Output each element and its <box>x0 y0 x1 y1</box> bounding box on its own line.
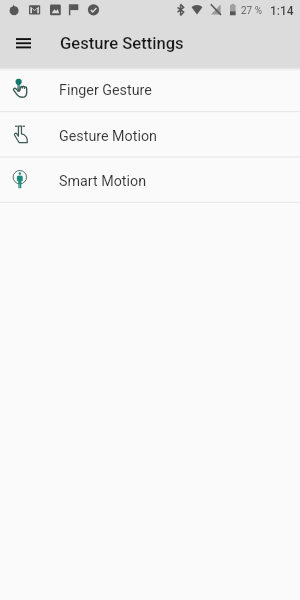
staticText: 27 % <box>241 5 263 17</box>
button[interactable]: Finger Gesture <box>0 66 300 111</box>
staticText: 1:14 <box>270 4 294 18</box>
staticText: Finger Gesture <box>59 82 152 99</box>
staticText: Smart Motion <box>59 173 147 190</box>
button[interactable]: Smart Motion <box>0 157 300 202</box>
staticText: Gesture Settings <box>60 34 184 53</box>
staticText: Gesture Motion <box>59 128 157 145</box>
button[interactable]: Gesture Motion <box>0 112 300 157</box>
button[interactable]: Open navigation menu <box>0 20 48 66</box>
